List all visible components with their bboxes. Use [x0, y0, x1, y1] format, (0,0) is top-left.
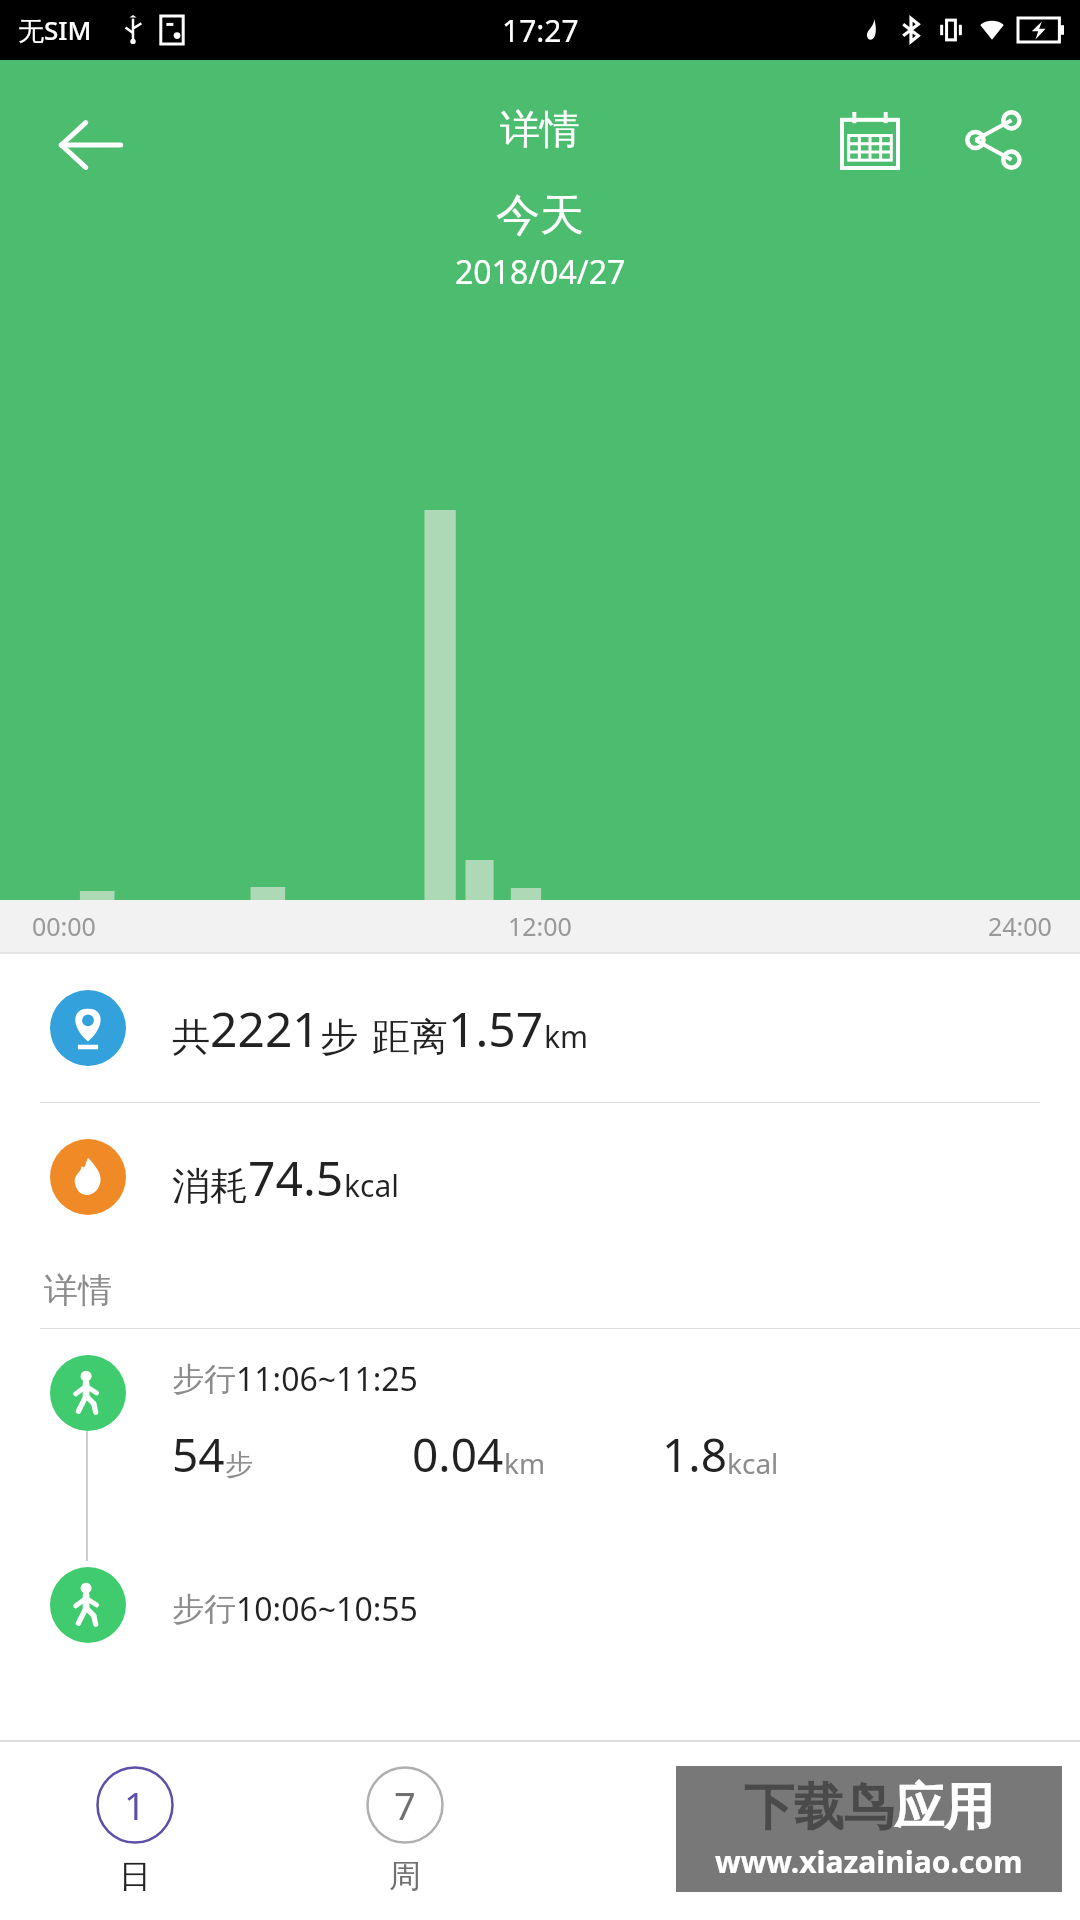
- staticText: 1.8: [662, 1423, 727, 1486]
- staticText: 12:00: [508, 909, 572, 943]
- button[interactable]: 共: [0, 954, 1080, 1102]
- staticText: 周: [389, 1856, 421, 1896]
- staticText: 17:27: [502, 10, 579, 51]
- staticText: 10:06~10:55: [236, 1587, 418, 1631]
- staticText: 消耗: [172, 1162, 248, 1210]
- button[interactable]: 7: [270, 1742, 540, 1920]
- button[interactable]: 消耗: [0, 1103, 1080, 1251]
- staticText: 日: [119, 1856, 151, 1896]
- staticText: 距离: [372, 1013, 448, 1061]
- staticText: 2221: [210, 996, 320, 1061]
- button[interactable]: 步行: [0, 1329, 1080, 1561]
- button[interactable]: Calendar: [820, 90, 920, 190]
- staticText: 应用: [894, 1776, 994, 1839]
- staticText: 7: [394, 1779, 416, 1831]
- staticText: 无SIM: [18, 12, 92, 48]
- staticText: 下载鸟: [744, 1776, 894, 1839]
- staticText: 74.5: [248, 1145, 344, 1210]
- staticText: kcal: [727, 1444, 779, 1482]
- staticText: 1: [124, 1779, 146, 1831]
- staticText: 详情: [44, 1269, 112, 1312]
- staticText: 2018/04/27: [455, 250, 626, 294]
- button[interactable]: Back: [36, 90, 146, 200]
- button[interactable]: 1: [0, 1742, 270, 1920]
- staticText: 00:00: [32, 909, 96, 943]
- staticText: 1.57: [448, 996, 544, 1061]
- staticText: 54: [172, 1423, 225, 1486]
- staticText: 0.04: [412, 1423, 504, 1486]
- staticText: 步: [320, 1013, 358, 1061]
- button[interactable]: Share: [944, 90, 1044, 190]
- staticText: km: [544, 1016, 589, 1057]
- button[interactable]: 步行: [0, 1561, 1080, 1671]
- staticText: 11:06~11:25: [236, 1357, 418, 1401]
- staticText: 今天: [496, 188, 584, 243]
- staticText: 详情: [500, 104, 580, 154]
- staticText: 共: [172, 1013, 210, 1061]
- staticText: kcal: [344, 1165, 399, 1206]
- staticText: 步行: [172, 1589, 236, 1629]
- staticText: 步: [225, 1447, 253, 1482]
- staticText: 24:00: [988, 909, 1052, 943]
- staticText: www.xiazainiao.com: [715, 1841, 1023, 1882]
- staticText: 步行: [172, 1359, 236, 1399]
- staticText: km: [504, 1444, 546, 1482]
